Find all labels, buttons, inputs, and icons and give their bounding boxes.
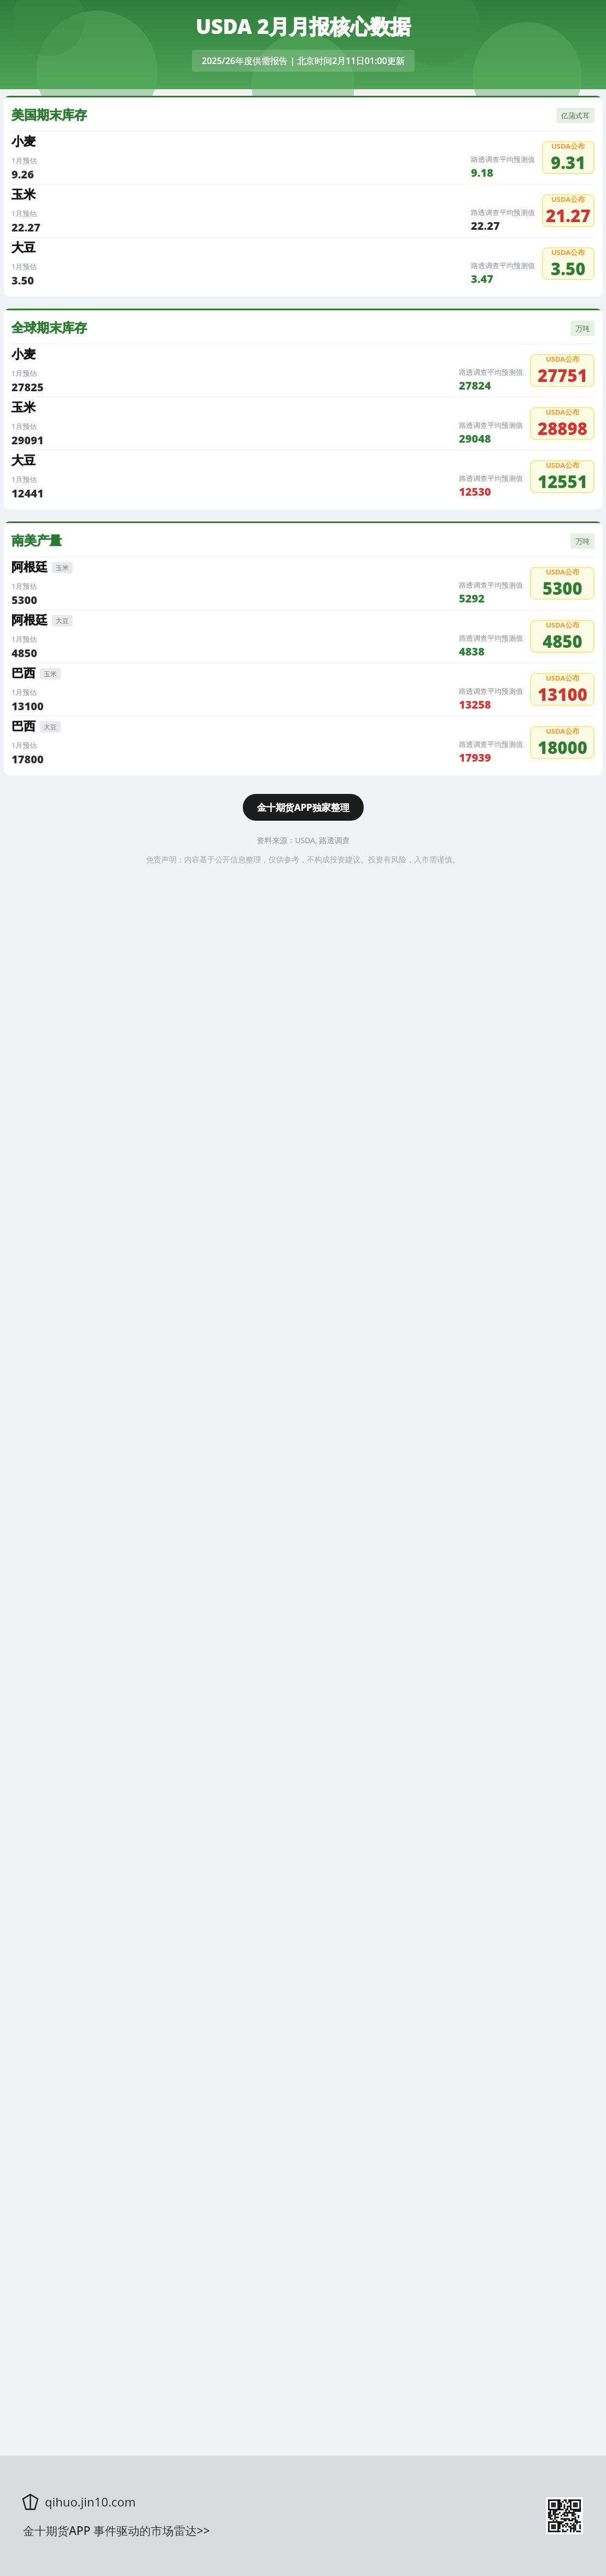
- other: QR code: [546, 2497, 583, 2534]
- staticText: 3.47: [471, 271, 493, 286]
- button[interactable]: 玉米: [11, 397, 595, 450]
- staticText: USDA公布: [546, 567, 580, 577]
- staticText: 13100: [11, 699, 44, 713]
- staticText: 美国期末库存: [11, 107, 87, 123]
- staticText: 4838: [459, 644, 485, 659]
- staticText: 29048: [459, 431, 491, 446]
- staticText: 玉米: [11, 187, 36, 202]
- staticText: 9.26: [11, 167, 34, 182]
- staticText: 13258: [459, 697, 491, 712]
- staticText: 1月预估: [11, 740, 37, 750]
- staticText: 大豆: [11, 453, 36, 468]
- staticText: 12551: [538, 470, 587, 493]
- staticText: USDA公布: [546, 407, 580, 417]
- button[interactable]: 巴西: [11, 716, 595, 769]
- staticText: 1月预估: [11, 581, 37, 591]
- staticText: 1月预估: [11, 155, 37, 165]
- staticText: 阿根廷: [11, 613, 48, 628]
- staticText: 1月预估: [11, 687, 37, 697]
- staticText: 南美产量: [11, 533, 62, 549]
- staticText: 5300: [11, 593, 37, 607]
- staticText: 玉米: [44, 670, 57, 678]
- button[interactable]: 巴西: [11, 663, 595, 716]
- staticText: 12530: [459, 484, 491, 499]
- staticText: 金十期货APP 事件驱动的市场雷达>>: [23, 2523, 210, 2539]
- staticText: 3.50: [11, 273, 34, 288]
- staticText: USDA公布: [546, 620, 580, 630]
- staticText: 路透调查平均预测值: [471, 208, 535, 217]
- staticText: 免责声明：内容基于公开信息整理，仅供参考，不构成投资建议。投资有风险，入市需谨慎…: [146, 855, 460, 865]
- button[interactable]: 金十期货APP独家整理: [243, 794, 364, 821]
- staticText: 全球期末库存: [11, 320, 87, 336]
- staticText: 路透调查平均预测值: [459, 740, 523, 749]
- staticText: 1月预估: [11, 474, 37, 484]
- staticText: 路透调查平均预测值: [459, 581, 523, 589]
- staticText: 1月预估: [11, 208, 37, 218]
- staticText: 2025/26年度供需报告 | 北京时间2月11日01:00更新: [202, 55, 405, 67]
- staticText: 9.18: [471, 165, 493, 180]
- staticText: 1月预估: [11, 634, 37, 644]
- staticText: qihuo.jin10.com: [45, 2493, 136, 2510]
- staticText: USDA公布: [546, 460, 580, 470]
- staticText: 4850: [543, 630, 582, 653]
- staticText: 22.27: [11, 220, 40, 235]
- staticText: 4850: [11, 646, 37, 660]
- staticText: 路透调查平均预测值: [471, 155, 535, 164]
- staticText: 13100: [538, 683, 587, 706]
- staticText: 路透调查平均预测值: [459, 474, 523, 483]
- staticText: 3.50: [551, 257, 586, 280]
- staticText: 路透调查平均预测值: [459, 421, 523, 430]
- staticText: 27824: [459, 378, 491, 393]
- staticText: USDA公布: [546, 673, 580, 683]
- staticText: 大豆: [56, 617, 69, 625]
- staticText: USDA公布: [551, 194, 585, 204]
- staticText: 玉米: [11, 400, 36, 415]
- staticText: 亿蒲式耳: [561, 111, 590, 120]
- staticText: 1月预估: [11, 262, 37, 271]
- staticText: 1月预估: [11, 421, 37, 431]
- button[interactable]: 大豆: [11, 237, 595, 290]
- staticText: 27751: [538, 364, 587, 387]
- staticText: USDA公布: [551, 247, 585, 257]
- staticText: 小麦: [11, 347, 36, 362]
- staticText: 阿根廷: [11, 560, 48, 575]
- staticText: 资料来源：USDA, 路透调查: [257, 835, 350, 845]
- staticText: 巴西: [11, 719, 36, 734]
- staticText: 玉米: [56, 564, 69, 572]
- staticText: 万吨: [575, 537, 590, 546]
- staticText: 大豆: [44, 723, 57, 731]
- button[interactable]: 玉米: [11, 184, 595, 237]
- staticText: 12441: [11, 486, 44, 501]
- staticText: 9.31: [551, 151, 586, 174]
- staticText: 1月预估: [11, 368, 37, 378]
- button[interactable]: 大豆: [11, 450, 595, 503]
- staticText: USDA公布: [551, 141, 585, 151]
- staticText: 路透调查平均预测值: [459, 368, 523, 376]
- staticText: 28898: [538, 417, 587, 440]
- staticText: 巴西: [11, 666, 36, 681]
- staticText: USDA公布: [546, 726, 580, 736]
- staticText: 22.27: [471, 218, 500, 233]
- staticText: 小麦: [11, 134, 36, 149]
- staticText: USDA公布: [546, 354, 580, 364]
- staticText: 大豆: [11, 240, 36, 256]
- staticText: 路透调查平均预测值: [459, 687, 523, 695]
- staticText: 5292: [459, 591, 485, 606]
- staticText: 17800: [11, 752, 44, 767]
- button[interactable]: 阿根廷: [11, 610, 595, 663]
- staticText: 万吨: [575, 324, 590, 333]
- button[interactable]: qihuo.jin10.com: [23, 2493, 546, 2539]
- button[interactable]: 小麦: [11, 131, 595, 184]
- staticText: 金十期货APP独家整理: [257, 801, 349, 814]
- button[interactable]: 阿根廷: [11, 557, 595, 610]
- staticText: 路透调查平均预测值: [459, 634, 523, 642]
- staticText: 5300: [543, 577, 582, 600]
- staticText: USDA 2月月报核心数据: [196, 12, 411, 40]
- staticText: 29091: [11, 433, 44, 448]
- staticText: 17939: [459, 750, 491, 765]
- staticText: 21.27: [546, 204, 591, 227]
- button[interactable]: 小麦: [11, 344, 595, 397]
- staticText: 18000: [538, 736, 587, 759]
- staticText: 27825: [11, 380, 44, 394]
- staticText: 路透调查平均预测值: [471, 261, 535, 270]
